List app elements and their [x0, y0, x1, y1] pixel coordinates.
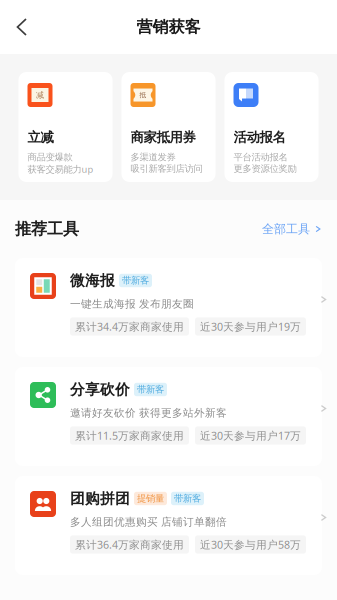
staticText: 近30天参与用户58万 [200, 537, 301, 552]
staticText: 立减 [27, 129, 53, 145]
button[interactable]: 全部工具 [262, 222, 323, 236]
button[interactable]: 活动报名 [224, 72, 318, 182]
staticText: 商家抵用券 [130, 129, 195, 145]
staticText: 多渠道发券 [130, 151, 175, 163]
staticText: 减 [36, 90, 44, 100]
staticText: 活动报名 [233, 129, 285, 145]
staticText: 获客交易能力up [27, 163, 93, 175]
staticText: 商品变爆款 [27, 151, 72, 163]
staticText: 近30天参与用户19万 [200, 319, 301, 334]
staticText: 微海报 [70, 271, 115, 289]
button[interactable]: 微海报 [15, 258, 322, 357]
staticText: 分享砍价 [70, 380, 130, 398]
staticText: 抵 [139, 91, 146, 99]
staticText: 多人组团优惠购买 店铺订单翻倍 [70, 515, 227, 528]
staticText: 邀请好友砍价 获得更多站外新客 [70, 406, 227, 419]
staticText: 提销量 [137, 493, 164, 504]
staticText: 带新客 [122, 275, 149, 286]
staticText: 近30天参与用户17万 [200, 428, 301, 443]
staticText: 平台活动报名 [233, 151, 287, 163]
staticText: 带新客 [174, 493, 201, 504]
staticText: 吸引新客到店访问 [130, 163, 202, 174]
staticText: 累计11.5万家商家使用 [75, 428, 184, 443]
button[interactable]: 减 [18, 72, 112, 182]
button[interactable]: 分享砍价 [15, 367, 322, 466]
staticText: 更多资源位奖励 [233, 163, 296, 174]
staticText: 累计36.4万家商家使用 [75, 537, 184, 552]
staticText: 团购拼团 [70, 489, 130, 507]
staticText: 一键生成海报 发布朋友圈 [70, 297, 194, 310]
button[interactable]: 抵 [121, 72, 215, 182]
staticText: 累计34.4万家商家使用 [75, 319, 184, 334]
staticText: 推荐工具 [15, 219, 79, 239]
staticText: 全部工具 [262, 222, 310, 236]
staticText: 营销获客 [136, 17, 200, 37]
button[interactable]: Back [0, 5, 44, 49]
button[interactable]: 团购拼团 [15, 476, 322, 575]
staticText: 带新客 [137, 384, 164, 395]
